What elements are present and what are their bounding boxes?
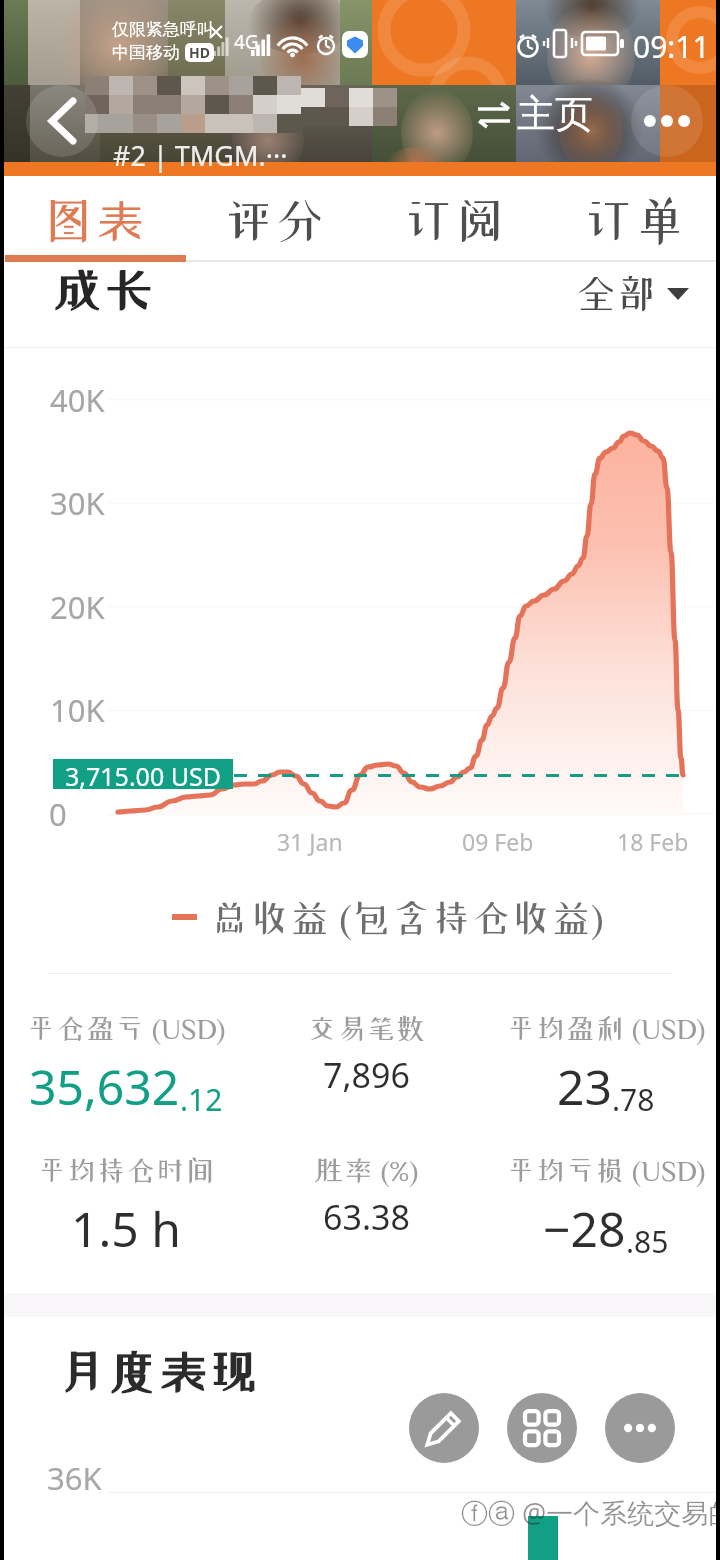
staticText: 平均持仓时间 (37, 1155, 216, 1184)
staticText: 35,632 (29, 1054, 180, 1119)
button[interactable]: Apps (507, 1393, 577, 1463)
staticText: 4G (234, 29, 259, 55)
button[interactable]: More (605, 1393, 675, 1463)
staticText: 胜率 (%) (314, 1155, 419, 1184)
staticText: .12 (180, 1079, 223, 1120)
staticText: 36K (47, 1457, 102, 1499)
staticText: 31 Jan (277, 826, 343, 857)
staticText: 评分 (223, 195, 326, 245)
button[interactable]: Back (26, 85, 98, 157)
staticText: #2 | TMGM.··· (113, 137, 288, 174)
staticText: 订单 (583, 195, 686, 245)
button[interactable]: 图表 (0, 176, 180, 262)
staticText: 平均亏损 (USD) (506, 1155, 706, 1184)
staticText: 40K (50, 379, 105, 421)
button[interactable]: 订阅 (360, 176, 540, 262)
staticText: 图表 (43, 195, 146, 245)
staticText: 1.5 h (71, 1196, 181, 1261)
staticText: 30K (50, 482, 105, 524)
staticText: 20K (50, 586, 105, 628)
staticText: 全部 (575, 273, 657, 313)
staticText: .85 (626, 1221, 669, 1262)
staticText: 主页 (517, 90, 593, 138)
staticText: 09:11 (633, 26, 710, 67)
button[interactable]: 全部 (575, 273, 689, 313)
button[interactable]: More options (631, 85, 703, 157)
staticText: 10K (50, 689, 105, 731)
staticText: HD (189, 43, 210, 62)
staticText: 09 Feb (462, 826, 534, 857)
staticText: 7,896 (323, 1052, 410, 1098)
button[interactable]: 订单 (540, 176, 720, 262)
staticText: 中国移动 (112, 42, 180, 63)
staticText: 平均盈利 (USD) (506, 1013, 706, 1042)
staticText: 23 (557, 1054, 612, 1119)
staticText: 63.38 (323, 1194, 410, 1240)
staticText: 0 (49, 793, 67, 835)
staticText: 月度表现 (55, 1346, 260, 1396)
staticText: 总收益 (包含持仓收益) (210, 898, 604, 937)
staticText: ⓕⓐ @一个系统交易的人 (461, 1494, 720, 1531)
staticText: 成长 (52, 264, 155, 314)
staticText: 订阅 (403, 195, 506, 245)
staticText: 仅限紧急呼叫 (112, 19, 214, 40)
staticText: 平仓盈亏 (USD) (26, 1013, 226, 1042)
staticText: 交易笔数 (307, 1013, 426, 1042)
staticText: 3,715.00 USD (65, 759, 221, 789)
staticText: 18 Feb (617, 826, 689, 857)
button[interactable]: 评分 (180, 176, 360, 262)
staticText: .78 (612, 1079, 655, 1120)
staticText: −28 (543, 1196, 626, 1261)
button[interactable]: Edit (409, 1393, 479, 1463)
